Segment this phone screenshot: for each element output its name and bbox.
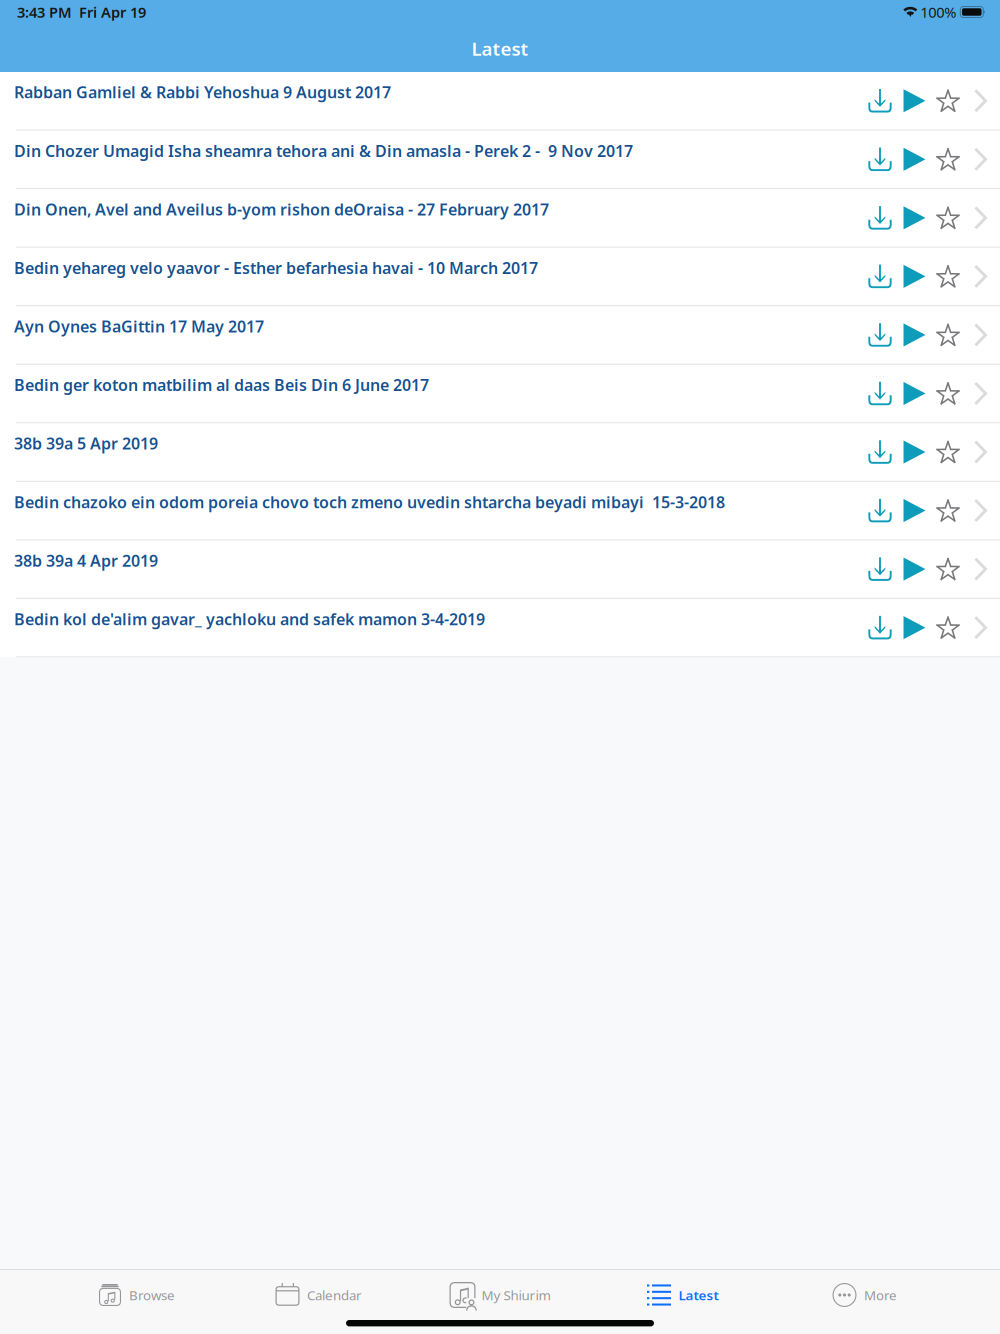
button[interactable]: Bedin kol de'alim gavar_ yachloku and sa… [0,599,1000,656]
button[interactable]: Play [897,189,931,247]
button[interactable]: Add to favourites [931,306,965,364]
staticText: Browse [129,1286,175,1304]
staticText: 38b 39a 4 Apr 2019 [14,550,158,571]
button[interactable]: Bedin yehareg velo yaavor - Esther befar… [0,248,1000,305]
button[interactable]: Browse [45,1270,227,1320]
button[interactable]: Download [863,306,897,364]
button[interactable]: 38b 39a 4 Apr 2019 [0,540,1000,598]
staticText: Latest [471,36,528,61]
button[interactable]: Download [863,599,897,656]
staticText: My Shiurim [481,1286,550,1304]
staticText: Din Chozer Umagid Isha sheamra tehora an… [14,140,633,161]
button[interactable]: Add to favourites [931,131,965,188]
button[interactable]: Play [897,248,931,305]
button[interactable]: Ayn Oynes BaGittin 17 May 2017 [0,306,1000,364]
staticText: 100% [920,2,956,22]
button[interactable]: Download [863,365,897,422]
button[interactable]: 38b 39a 5 Apr 2019 [0,423,1000,481]
button[interactable]: Add to favourites [931,248,965,305]
button[interactable]: Download [863,189,897,247]
staticText: Calendar [307,1286,362,1304]
button[interactable]: Download [863,248,897,305]
staticText: Rabban Gamliel & Rabbi Yehoshua 9 August… [14,81,391,103]
button[interactable]: Download [863,72,897,129]
button[interactable]: Add to favourites [931,189,965,247]
button[interactable]: Play [897,306,931,364]
button[interactable]: Add to favourites [931,72,965,129]
button[interactable]: Download [863,540,897,598]
button[interactable]: Calendar [227,1270,409,1320]
button[interactable]: Play [897,365,931,422]
button[interactable]: Rabban Gamliel & Rabbi Yehoshua 9 August… [0,72,1000,129]
staticText: Bedin yehareg velo yaavor - Esther befar… [14,257,538,278]
button[interactable]: Add to favourites [931,482,965,539]
button[interactable]: Play [897,599,931,656]
button[interactable]: Bedin chazoko ein odom poreia chovo toch… [0,482,1000,539]
button[interactable]: Add to favourites [931,540,965,598]
button[interactable]: Download [863,131,897,188]
staticText: Bedin kol de'alim gavar_ yachloku and sa… [14,608,485,630]
button[interactable]: Add to favourites [931,365,965,422]
button[interactable]: More [773,1270,955,1320]
staticText: Bedin ger koton matbilim al daas Beis Di… [14,374,429,395]
button[interactable]: Play [897,131,931,188]
button[interactable]: Play [897,72,931,129]
button[interactable]: Play [897,423,931,481]
staticText: Fri Apr 19 [79,2,146,22]
button[interactable]: Latest [591,1270,773,1320]
button[interactable]: Bedin ger koton matbilim al daas Beis Di… [0,365,1000,422]
button[interactable]: Download [863,482,897,539]
staticText: Din Onen, Avel and Aveilus b-yom rishon … [14,199,549,220]
staticText: More [864,1286,897,1304]
button[interactable]: Add to favourites [931,599,965,656]
button[interactable]: Download [863,423,897,481]
button[interactable]: Din Onen, Avel and Aveilus b-yom rishon … [0,189,1000,247]
staticText: Ayn Oynes BaGittin 17 May 2017 [14,316,264,337]
staticText: 3:43 PM [17,2,72,22]
button[interactable]: Play [897,482,931,539]
button[interactable]: My Shiurim [409,1270,591,1320]
staticText: Bedin chazoko ein odom poreia chovo toch… [14,491,725,512]
button[interactable]: Din Chozer Umagid Isha sheamra tehora an… [0,131,1000,188]
button[interactable]: Play [897,540,931,598]
staticText: 38b 39a 5 Apr 2019 [14,433,158,454]
staticText: Latest [678,1286,718,1304]
button[interactable]: Add to favourites [931,423,965,481]
